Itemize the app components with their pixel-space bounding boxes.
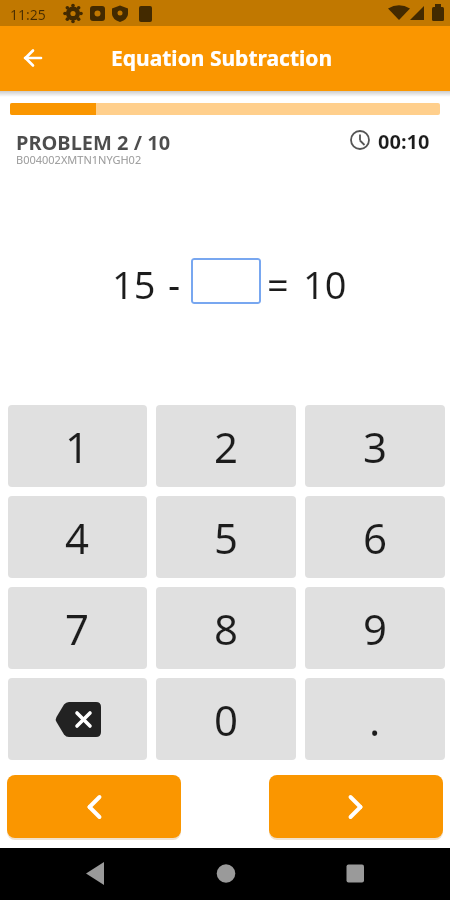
button[interactable]: 7 xyxy=(8,587,147,669)
staticText: Equation Subtraction xyxy=(111,44,333,73)
staticText: 8 xyxy=(214,600,239,657)
button[interactable] xyxy=(80,858,110,888)
button[interactable]: 9 xyxy=(305,587,445,669)
staticText: 10 xyxy=(303,258,347,310)
button[interactable] xyxy=(269,775,443,838)
staticText: B004002XMTN1NYGH02 xyxy=(16,152,142,167)
staticText: 3 xyxy=(363,418,388,475)
button[interactable] xyxy=(8,678,147,760)
button[interactable] xyxy=(191,258,261,304)
button[interactable]: 1 xyxy=(8,405,147,487)
staticText: = xyxy=(267,258,289,310)
button[interactable] xyxy=(7,775,181,838)
button[interactable] xyxy=(211,858,241,888)
staticText: 15 xyxy=(112,258,156,310)
staticText: . xyxy=(369,691,381,748)
staticText: 1 xyxy=(65,418,90,475)
staticText: 9 xyxy=(363,600,388,657)
button[interactable]: 3 xyxy=(305,405,445,487)
staticText: 4 xyxy=(65,509,90,566)
staticText: PROBLEM 2 / 10 xyxy=(16,129,171,156)
button[interactable]: 5 xyxy=(156,496,296,578)
staticText: 0 xyxy=(214,691,239,748)
staticText: 2 xyxy=(214,418,239,475)
button[interactable]: 8 xyxy=(156,587,296,669)
button[interactable]: 0 xyxy=(156,678,296,760)
button[interactable] xyxy=(340,858,370,888)
button[interactable]: 4 xyxy=(8,496,147,578)
staticText: 00:10 xyxy=(378,128,430,155)
staticText: 5 xyxy=(214,509,239,566)
button[interactable] xyxy=(13,38,53,78)
staticText: 7 xyxy=(65,600,90,657)
button[interactable]: 2 xyxy=(156,405,296,487)
button[interactable]: 6 xyxy=(305,496,445,578)
staticText: 6 xyxy=(363,509,388,566)
staticText: - xyxy=(168,258,181,310)
staticText: 11:25 xyxy=(10,5,46,24)
button[interactable]: . xyxy=(305,678,445,760)
